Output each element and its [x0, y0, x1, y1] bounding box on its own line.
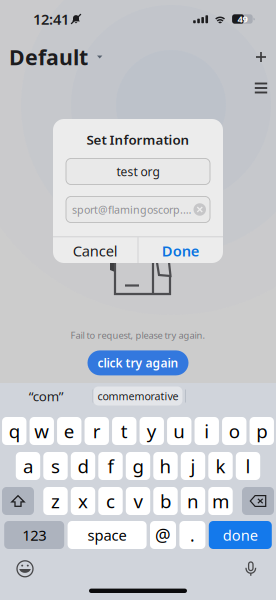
button[interactable]: space — [68, 521, 147, 549]
staticText: . — [190, 523, 195, 546]
button[interactable]: Shift — [2, 487, 34, 515]
button[interactable]: o — [222, 417, 246, 445]
staticText: k — [215, 454, 225, 478]
staticText: “com” — [29, 387, 64, 405]
button[interactable]: Menu — [249, 79, 273, 97]
staticText: u — [173, 419, 185, 443]
button[interactable]: 123 — [4, 521, 64, 549]
button[interactable]: v — [126, 487, 150, 515]
staticText: f — [107, 454, 113, 478]
button[interactable]: k — [208, 452, 233, 480]
staticText: g — [132, 454, 143, 478]
button[interactable]: click try again — [87, 350, 188, 375]
button[interactable]: Done — [138, 237, 223, 264]
staticText: Default — [9, 43, 88, 71]
button[interactable]: Dictate — [236, 559, 266, 579]
staticText: Cancel — [73, 241, 118, 260]
staticText: a — [23, 454, 33, 478]
button[interactable]: t — [112, 417, 136, 445]
button[interactable]: d — [71, 452, 95, 480]
staticText: e — [64, 419, 75, 443]
button[interactable]: i — [194, 417, 219, 445]
staticText: p — [256, 419, 267, 443]
staticText: c — [106, 489, 115, 513]
staticText: l — [245, 454, 250, 478]
staticText: Fail to request, please try again. — [70, 329, 205, 341]
staticText: commemorative — [97, 389, 178, 403]
button[interactable]: a — [16, 452, 40, 480]
staticText: Done — [162, 241, 200, 260]
staticText: 49 — [237, 13, 247, 25]
staticText: o — [229, 419, 240, 443]
staticText: @ — [155, 523, 171, 546]
button[interactable]: p — [249, 417, 274, 445]
button[interactable]: z — [43, 487, 68, 515]
button[interactable]: n — [181, 487, 205, 515]
staticText: m — [212, 489, 229, 513]
button[interactable]: h — [153, 452, 178, 480]
button[interactable]: Add — [249, 46, 273, 68]
staticText: space — [88, 525, 127, 545]
button[interactable]: g — [126, 452, 150, 480]
staticText: q — [9, 419, 20, 443]
button[interactable]: b — [153, 487, 178, 515]
staticText: h — [159, 454, 171, 478]
staticText: test org — [116, 163, 159, 179]
staticText: Set Information — [86, 131, 189, 148]
button[interactable]: e — [57, 417, 81, 445]
staticText: n — [187, 489, 199, 513]
button[interactable]: Delete — [242, 487, 274, 515]
staticText: y — [147, 419, 157, 443]
staticText: 12:41 — [33, 9, 69, 29]
button[interactable]: r — [84, 417, 109, 445]
button[interactable]: Cancel — [53, 237, 138, 264]
button[interactable]: @ — [150, 521, 176, 549]
button[interactable]: s — [43, 452, 68, 480]
staticText: sport@flamingoscorp.com — [72, 202, 193, 217]
staticText: x — [78, 489, 88, 513]
staticText: t — [121, 419, 128, 443]
button[interactable]: x — [71, 487, 95, 515]
staticText: i — [204, 419, 209, 443]
staticText: w — [34, 419, 49, 443]
button[interactable]: q — [2, 417, 26, 445]
staticText: d — [77, 454, 88, 478]
button[interactable]: done — [209, 521, 272, 549]
staticText: s — [51, 454, 60, 478]
button[interactable]: u — [167, 417, 191, 445]
button[interactable]: commemorative — [93, 383, 185, 409]
staticText: j — [190, 454, 195, 478]
button[interactable]: f — [98, 452, 123, 480]
staticText: z — [51, 489, 60, 513]
staticText: done — [223, 525, 258, 545]
staticText: b — [160, 489, 171, 513]
button[interactable]: Default — [0, 46, 106, 68]
button[interactable]: m — [208, 487, 233, 515]
staticText: v — [133, 489, 142, 513]
button[interactable]: “com” — [0, 383, 92, 409]
staticText: 123 — [22, 525, 46, 545]
staticText: click try again — [97, 355, 178, 371]
button[interactable]: l — [236, 452, 260, 480]
button[interactable]: . — [179, 521, 205, 549]
button[interactable]: j — [181, 452, 205, 480]
button[interactable]: c — [98, 487, 123, 515]
button[interactable]: Emoji — [10, 559, 40, 579]
button[interactable]: w — [29, 417, 54, 445]
button[interactable]: y — [139, 417, 164, 445]
staticText: r — [93, 419, 101, 443]
